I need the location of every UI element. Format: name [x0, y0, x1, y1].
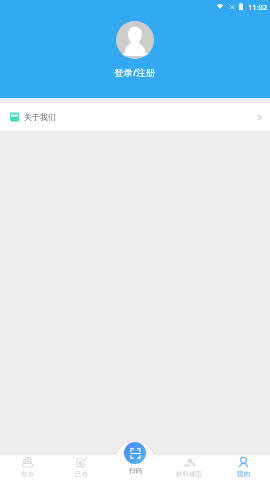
button[interactable]: 已办: [54, 457, 108, 480]
staticText: 扫码: [129, 467, 142, 475]
button[interactable]: 我的: [216, 457, 270, 480]
staticText: 材料规范: [176, 470, 202, 478]
button[interactable]: 登录/注册: [114, 66, 156, 79]
staticText: 关于我们: [24, 112, 56, 122]
button[interactable]: 材料规范: [162, 457, 216, 480]
staticText: 11:02: [248, 2, 268, 12]
staticText: 在办: [21, 470, 34, 478]
staticText: 我的: [237, 470, 250, 478]
button[interactable]: 在办: [0, 457, 54, 480]
staticText: 已办: [75, 470, 88, 478]
button[interactable]: 头像 Avatar: [116, 21, 154, 59]
staticText: 登录/注册: [114, 66, 156, 79]
button[interactable]: 扫码 Scan: [124, 442, 146, 464]
button[interactable]: 关于我们: [0, 103, 270, 131]
